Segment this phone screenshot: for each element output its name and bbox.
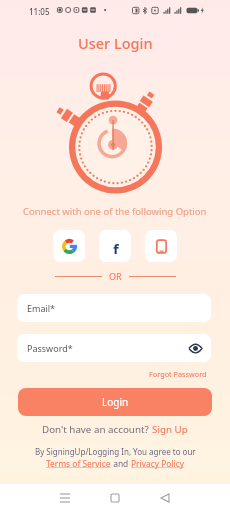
button[interactable]: Login: [18, 388, 212, 416]
button[interactable]: Sign in with Facebook: [99, 230, 131, 262]
staticText: Connect with one of the following Option: [23, 205, 207, 218]
button[interactable]: Home: [103, 486, 127, 510]
staticText: Login: [102, 395, 129, 409]
staticText: 11:05: [29, 6, 50, 17]
button[interactable]: Sign in with Phone: [145, 230, 177, 262]
staticText: and: [111, 458, 131, 469]
button[interactable]: Recents: [53, 486, 77, 510]
staticText: Email*: [27, 302, 56, 314]
button[interactable]: Sign in with Google: [53, 230, 85, 262]
staticText: Don't have an account?: [42, 423, 152, 436]
staticText: User Login: [78, 33, 153, 53]
button[interactable]: Privacy Policy: [131, 458, 184, 469]
staticText: Password*: [27, 342, 73, 354]
button[interactable]: Forgot Password: [147, 367, 209, 381]
button[interactable]: Terms of Service: [46, 458, 111, 469]
button[interactable]: Back: [153, 486, 177, 510]
staticText: By SigningUp/Logging In, You agree to ou…: [35, 446, 196, 457]
button[interactable]: Show password: [188, 341, 202, 355]
button[interactable]: Sign Up: [152, 423, 188, 436]
staticText: OR: [109, 270, 122, 282]
button[interactable]: Password*: [17, 334, 211, 362]
staticText: f: [113, 239, 119, 254]
button[interactable]: Email*: [17, 294, 211, 322]
